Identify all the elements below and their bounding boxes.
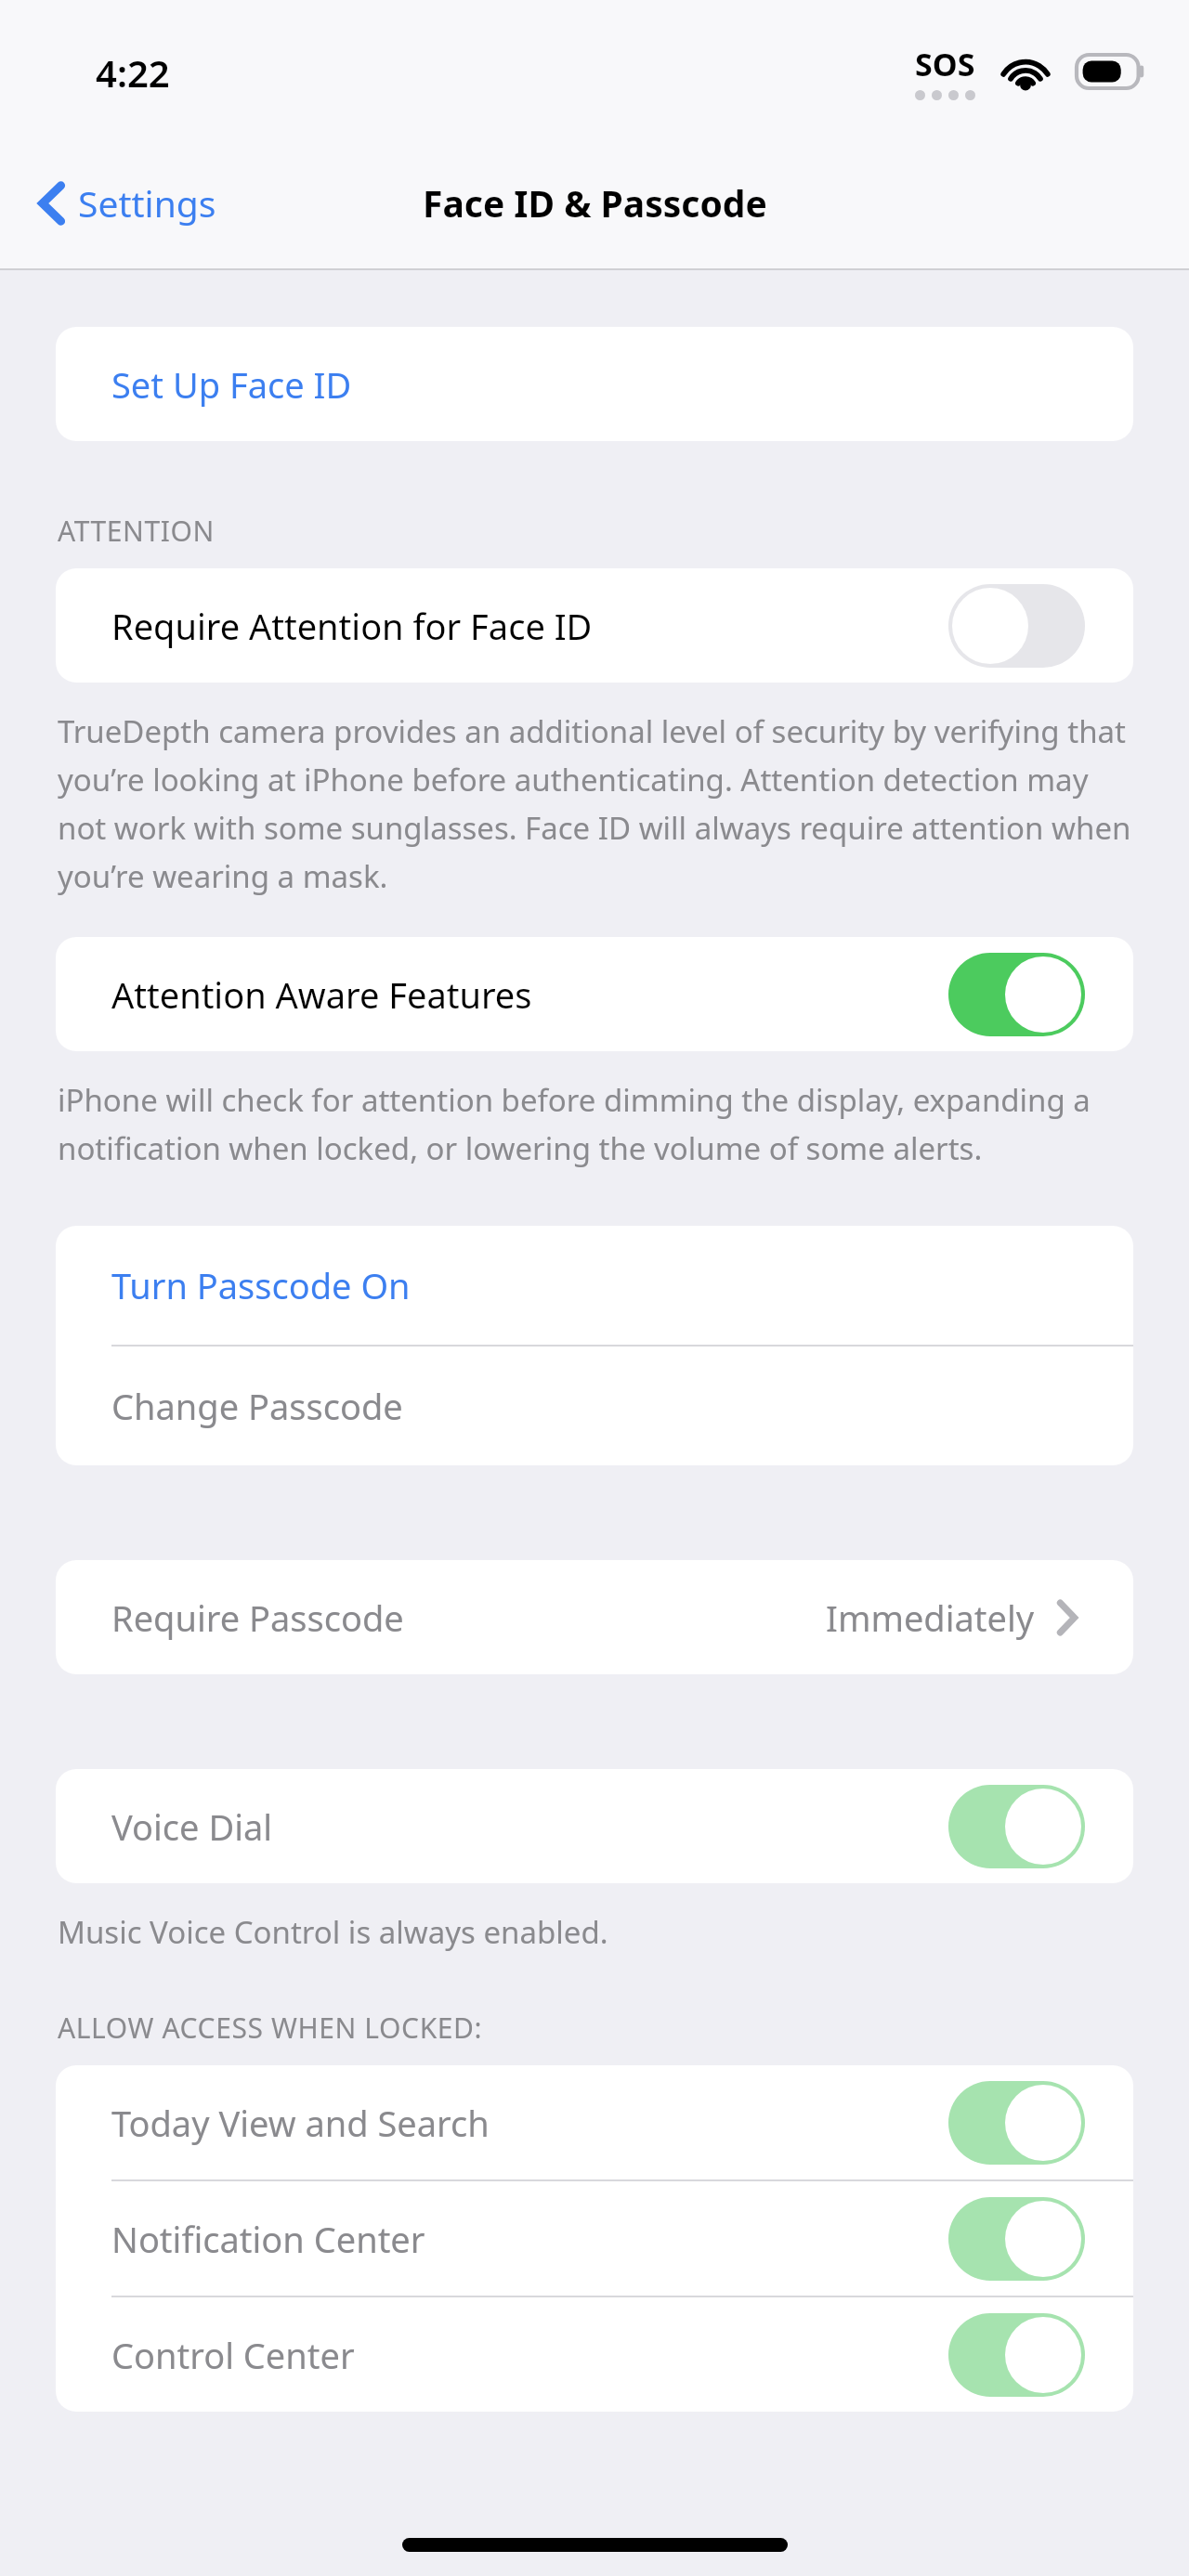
staticText: Settings <box>78 178 216 228</box>
button[interactable]: Control Center <box>56 2297 1133 2412</box>
staticText: Face ID & Passcode <box>423 178 767 228</box>
button[interactable]: Turn Passcode On <box>56 1226 1133 1345</box>
button[interactable]: Attention Aware Features switch <box>948 953 1085 1036</box>
button[interactable]: Change Passcode <box>56 1347 1133 1465</box>
staticText: 4:22 <box>96 47 170 98</box>
staticText: Voice Dial <box>111 1802 273 1851</box>
button[interactable]: Control Center switch <box>948 2313 1085 2397</box>
staticText: TrueDepth camera provides an additional … <box>58 710 1135 896</box>
button[interactable]: Voice Dial <box>56 1769 1133 1883</box>
button[interactable]: Settings <box>32 165 222 241</box>
staticText: Control Center <box>111 2331 355 2379</box>
button[interactable]: Voice Dial switch <box>948 1785 1085 1868</box>
staticText: Immediately <box>826 1594 1035 1642</box>
button[interactable]: Require Passcode <box>56 1560 1133 1674</box>
button[interactable]: Attention Aware Features <box>56 937 1133 1051</box>
button[interactable]: Notification Center <box>56 2181 1133 2296</box>
staticText: Turn Passcode On <box>111 1261 411 1309</box>
staticText: iPhone will check for attention before d… <box>58 1079 1135 1168</box>
staticText: Require Passcode <box>111 1594 404 1642</box>
staticText: ALLOW ACCESS WHEN LOCKED: <box>58 2009 483 2047</box>
staticText: Attention Aware Features <box>111 970 532 1019</box>
button[interactable]: Require Attention for Face ID switch <box>948 584 1085 668</box>
staticText: ATTENTION <box>58 512 215 550</box>
button[interactable]: Notification Center switch <box>948 2197 1085 2281</box>
staticText: Require Attention for Face ID <box>111 602 593 650</box>
button[interactable]: Today View and Search switch <box>948 2081 1085 2165</box>
staticText: Set Up Face ID <box>111 360 352 409</box>
staticText: Change Passcode <box>111 1382 403 1430</box>
staticText: Notification Center <box>111 2215 425 2263</box>
staticText: Today View and Search <box>111 2099 490 2147</box>
button[interactable]: Set Up Face ID <box>56 327 1133 441</box>
staticText: SOS <box>915 43 975 85</box>
button[interactable]: Require Attention for Face ID <box>56 568 1133 683</box>
button[interactable]: Today View and Search <box>56 2065 1133 2179</box>
staticText: Music Voice Control is always enabled. <box>58 1911 1135 1953</box>
